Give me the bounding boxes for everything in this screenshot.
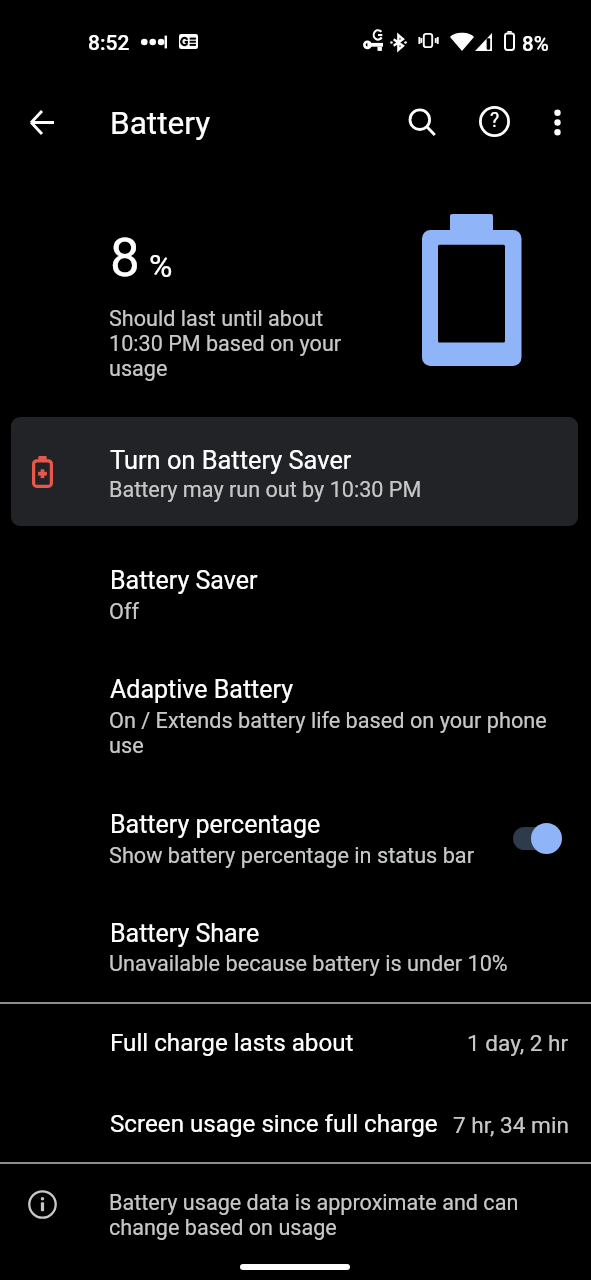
staticText: 7 hr, 34 min — [453, 1112, 569, 1138]
button[interactable]: Battery Saver — [0, 554, 591, 634]
staticText: % — [149, 247, 173, 285]
staticText: ? — [490, 109, 500, 132]
staticText: Battery Share — [110, 919, 260, 948]
staticText: Show battery percentage in status bar — [109, 843, 509, 868]
staticText: Should last until about 10:30 PM based o… — [109, 306, 364, 381]
button[interactable]: Turn on Battery Saver — [11, 417, 578, 526]
staticText: Full charge lasts about — [110, 1029, 354, 1057]
staticText: Adaptive Battery — [110, 675, 294, 704]
button[interactable]: Help — [470, 97, 518, 145]
staticText: Battery may run out by 10:30 PM — [109, 477, 422, 502]
staticText: Screen usage since full charge — [110, 1110, 438, 1138]
button[interactable]: Battery Share — [0, 907, 591, 987]
staticText: Battery — [110, 105, 211, 142]
button[interactable]: Battery percentage — [0, 798, 591, 878]
staticText: 1 day, 2 hr — [467, 1030, 569, 1056]
staticText: On / Extends battery life based on your … — [109, 708, 561, 758]
button[interactable]: More options — [533, 98, 581, 146]
button[interactable]: Battery percentage toggle — [504, 814, 570, 856]
staticText: 8% — [522, 32, 549, 56]
staticText: Battery usage data is approximate and ca… — [109, 1190, 534, 1240]
staticText: 8 — [110, 227, 140, 289]
staticText: Turn on Battery Saver — [110, 445, 352, 475]
button[interactable]: Search — [398, 98, 446, 146]
staticText: Off — [109, 599, 549, 624]
button[interactable]: Screen usage since full charge — [0, 1091, 591, 1171]
button[interactable]: Adaptive Battery — [0, 663, 591, 769]
staticText: Unavailable because battery is under 10% — [109, 951, 549, 976]
staticText: Battery percentage — [110, 810, 321, 839]
staticText: 8:52 — [88, 31, 130, 56]
button[interactable]: Navigate up — [18, 98, 66, 146]
staticText: Battery Saver — [110, 566, 258, 595]
button[interactable]: Full charge lasts about — [0, 1010, 591, 1090]
